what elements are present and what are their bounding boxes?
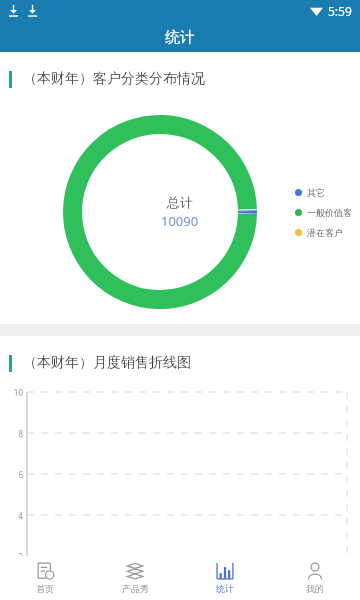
staticText: 其它 xyxy=(307,187,325,198)
staticText: 10 xyxy=(3,387,23,398)
staticText: 10090 xyxy=(161,212,199,230)
button[interactable]: 我的 xyxy=(270,556,360,600)
staticText: 6 xyxy=(3,469,23,480)
staticText: 统计 xyxy=(216,583,234,594)
staticText: 我的 xyxy=(306,583,324,594)
staticText: 2 xyxy=(3,551,23,562)
staticText: 总计 xyxy=(167,194,193,210)
staticText: 统计 xyxy=(165,28,195,47)
staticText: 潜在客户 xyxy=(307,227,343,238)
staticText: 8 xyxy=(3,428,23,439)
staticText: 4 xyxy=(3,510,23,521)
staticText: （本财年）月度销售折线图 xyxy=(23,354,191,372)
staticText: 首页 xyxy=(36,583,54,594)
staticText: 产品秀 xyxy=(122,583,149,594)
button[interactable]: 统计 xyxy=(180,556,270,600)
button[interactable]: 产品秀 xyxy=(90,556,180,600)
button[interactable]: 首页 xyxy=(0,556,90,600)
staticText: 一般价值客 xyxy=(307,207,352,218)
staticText: 5:59 xyxy=(328,3,352,19)
staticText: （本财年）客户分类分布情况 xyxy=(23,70,205,88)
